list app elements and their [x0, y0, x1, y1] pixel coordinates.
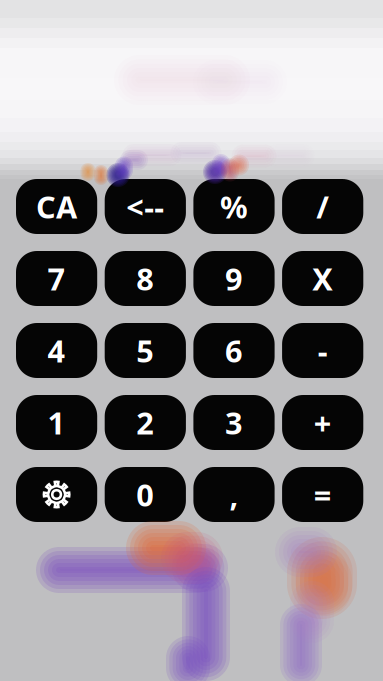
staticText: - — [318, 330, 328, 371]
button[interactable]: + — [282, 395, 363, 450]
button[interactable]: CA — [16, 179, 97, 234]
button[interactable]: 2 — [105, 395, 186, 450]
staticText: % — [220, 186, 248, 227]
button[interactable]: X — [282, 251, 363, 306]
button[interactable]: 6 — [193, 323, 275, 378]
button[interactable]: <-- — [105, 179, 186, 234]
staticText: , — [229, 474, 238, 515]
button[interactable]: % — [193, 179, 275, 234]
button[interactable]: 1 — [16, 395, 97, 450]
button[interactable]: 0 — [105, 467, 186, 522]
button[interactable]: 7 — [16, 251, 97, 306]
button[interactable]: - — [282, 323, 363, 378]
button[interactable]: 8 — [105, 251, 186, 306]
button[interactable]: , — [193, 467, 275, 522]
staticText: / — [316, 186, 329, 227]
staticText: 7 — [48, 258, 66, 299]
staticText: 8 — [136, 258, 154, 299]
staticText: 0 — [136, 474, 154, 515]
staticText: + — [314, 402, 332, 443]
staticText: 4 — [48, 330, 66, 371]
staticText: 1 — [48, 402, 66, 443]
staticText: 2 — [136, 402, 154, 443]
button[interactable]: 9 — [193, 251, 275, 306]
button[interactable]: Settings — [16, 467, 97, 522]
button[interactable]: = — [282, 467, 363, 522]
button[interactable]: 3 — [193, 395, 275, 450]
staticText: = — [314, 474, 332, 515]
button[interactable]: / — [282, 179, 363, 234]
staticText: 3 — [225, 402, 243, 443]
staticText: X — [312, 258, 333, 299]
button[interactable]: 5 — [105, 323, 186, 378]
staticText: 5 — [136, 330, 154, 371]
staticText: <-- — [126, 186, 164, 227]
staticText: 6 — [225, 330, 243, 371]
button[interactable]: 4 — [16, 323, 97, 378]
staticText: CA — [36, 186, 77, 227]
staticText: 9 — [225, 258, 243, 299]
